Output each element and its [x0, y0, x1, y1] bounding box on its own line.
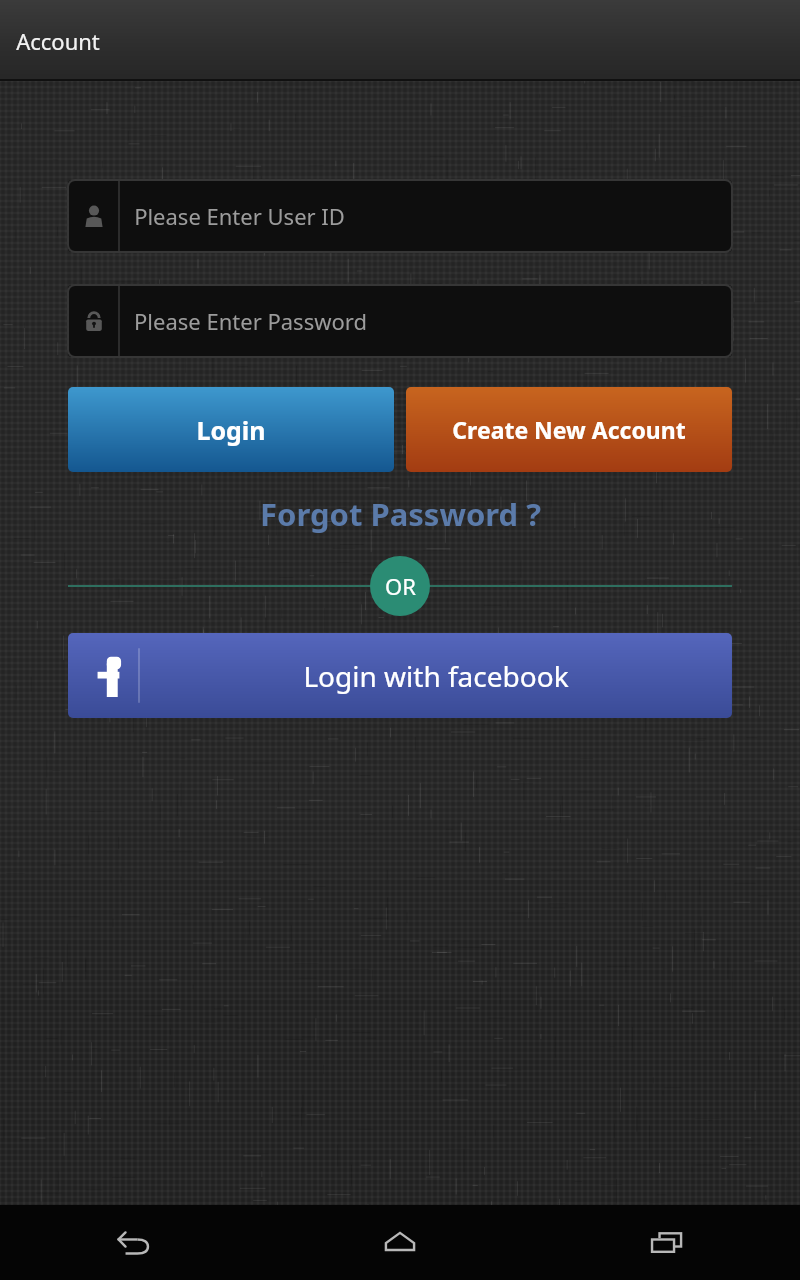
- staticText: Please Enter Password: [134, 306, 367, 336]
- staticText: Forgot Password ?: [260, 493, 541, 535]
- button[interactable]: Create New Account: [406, 387, 732, 472]
- button[interactable]: Recent apps: [533, 1205, 800, 1280]
- staticText: Please Enter User ID: [134, 201, 345, 231]
- staticText: Login: [196, 413, 266, 447]
- staticText: Account: [16, 26, 100, 56]
- staticText: Login with facebook: [303, 657, 569, 695]
- button[interactable]: Please Enter User ID: [68, 180, 732, 252]
- button[interactable]: Home: [266, 1205, 533, 1280]
- button[interactable]: Forgot Password ?: [0, 486, 800, 542]
- button[interactable]: Login: [68, 387, 394, 472]
- button[interactable]: Please Enter Password: [68, 285, 732, 357]
- button[interactable]: Back: [0, 1205, 266, 1280]
- staticText: Create New Account: [452, 414, 686, 445]
- staticText: OR: [385, 571, 416, 601]
- button[interactable]: Login with facebook: [68, 633, 732, 718]
